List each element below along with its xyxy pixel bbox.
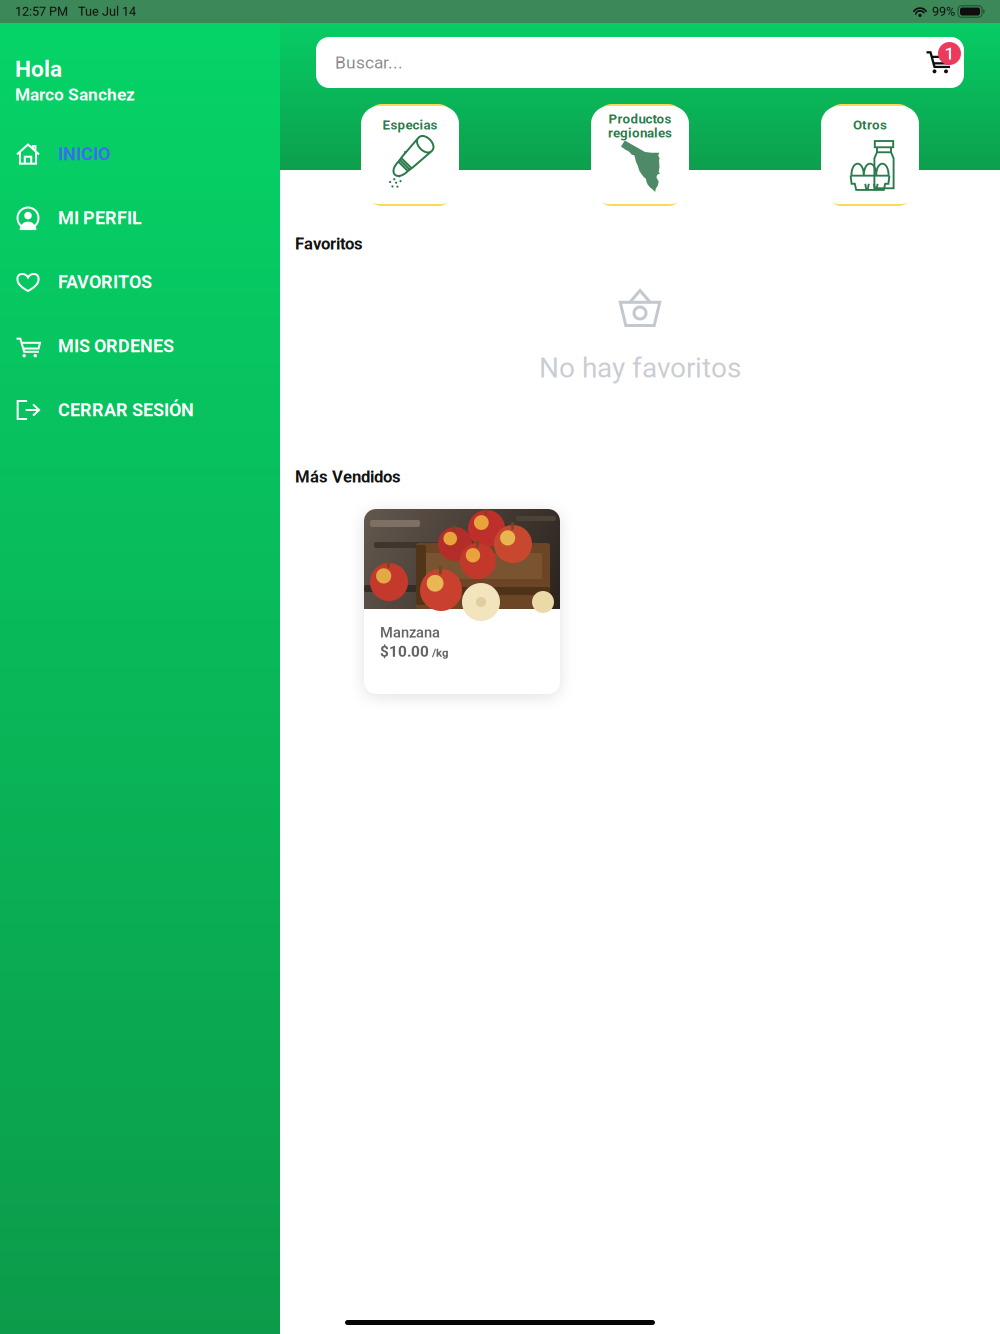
button[interactable]: Shopping cart (908, 37, 964, 88)
staticText: FAVORITOS (58, 271, 152, 293)
staticText: /kg (432, 646, 448, 659)
button[interactable]: INICIO (0, 131, 280, 177)
staticText: Especias (382, 117, 437, 133)
staticText: Favoritos (295, 234, 363, 253)
staticText: Marco Sanchez (15, 84, 135, 105)
staticText: MI PERFIL (58, 207, 142, 229)
staticText: Hola (15, 56, 62, 82)
button[interactable]: Productos (591, 104, 689, 206)
staticText: Manzana (380, 624, 440, 641)
staticText: MIS ORDENES (58, 335, 174, 357)
staticText: 99% (932, 4, 955, 19)
button[interactable]: FAVORITOS (0, 259, 280, 305)
staticText: INICIO (58, 143, 110, 165)
staticText: regionales (608, 125, 672, 141)
button[interactable]: Otros (821, 104, 919, 206)
button[interactable]: Especias (361, 104, 459, 206)
staticText: Otros (853, 117, 887, 133)
staticText: Buscar... (335, 52, 403, 73)
staticText: 1 (944, 43, 954, 64)
button[interactable]: CERRAR SESIÓN (0, 387, 280, 433)
staticText: Más Vendidos (295, 467, 401, 486)
staticText: Tue Jul 14 (78, 4, 136, 19)
staticText: $10.00 (380, 642, 429, 660)
button[interactable]: Manzana (364, 509, 560, 694)
staticText: No hay favoritos (539, 352, 741, 384)
staticText: Productos (608, 111, 671, 127)
staticText: CERRAR SESIÓN (58, 399, 194, 421)
staticText: 12:57 PM (15, 4, 68, 19)
button[interactable]: MIS ORDENES (0, 323, 280, 369)
button[interactable]: MI PERFIL (0, 195, 280, 241)
